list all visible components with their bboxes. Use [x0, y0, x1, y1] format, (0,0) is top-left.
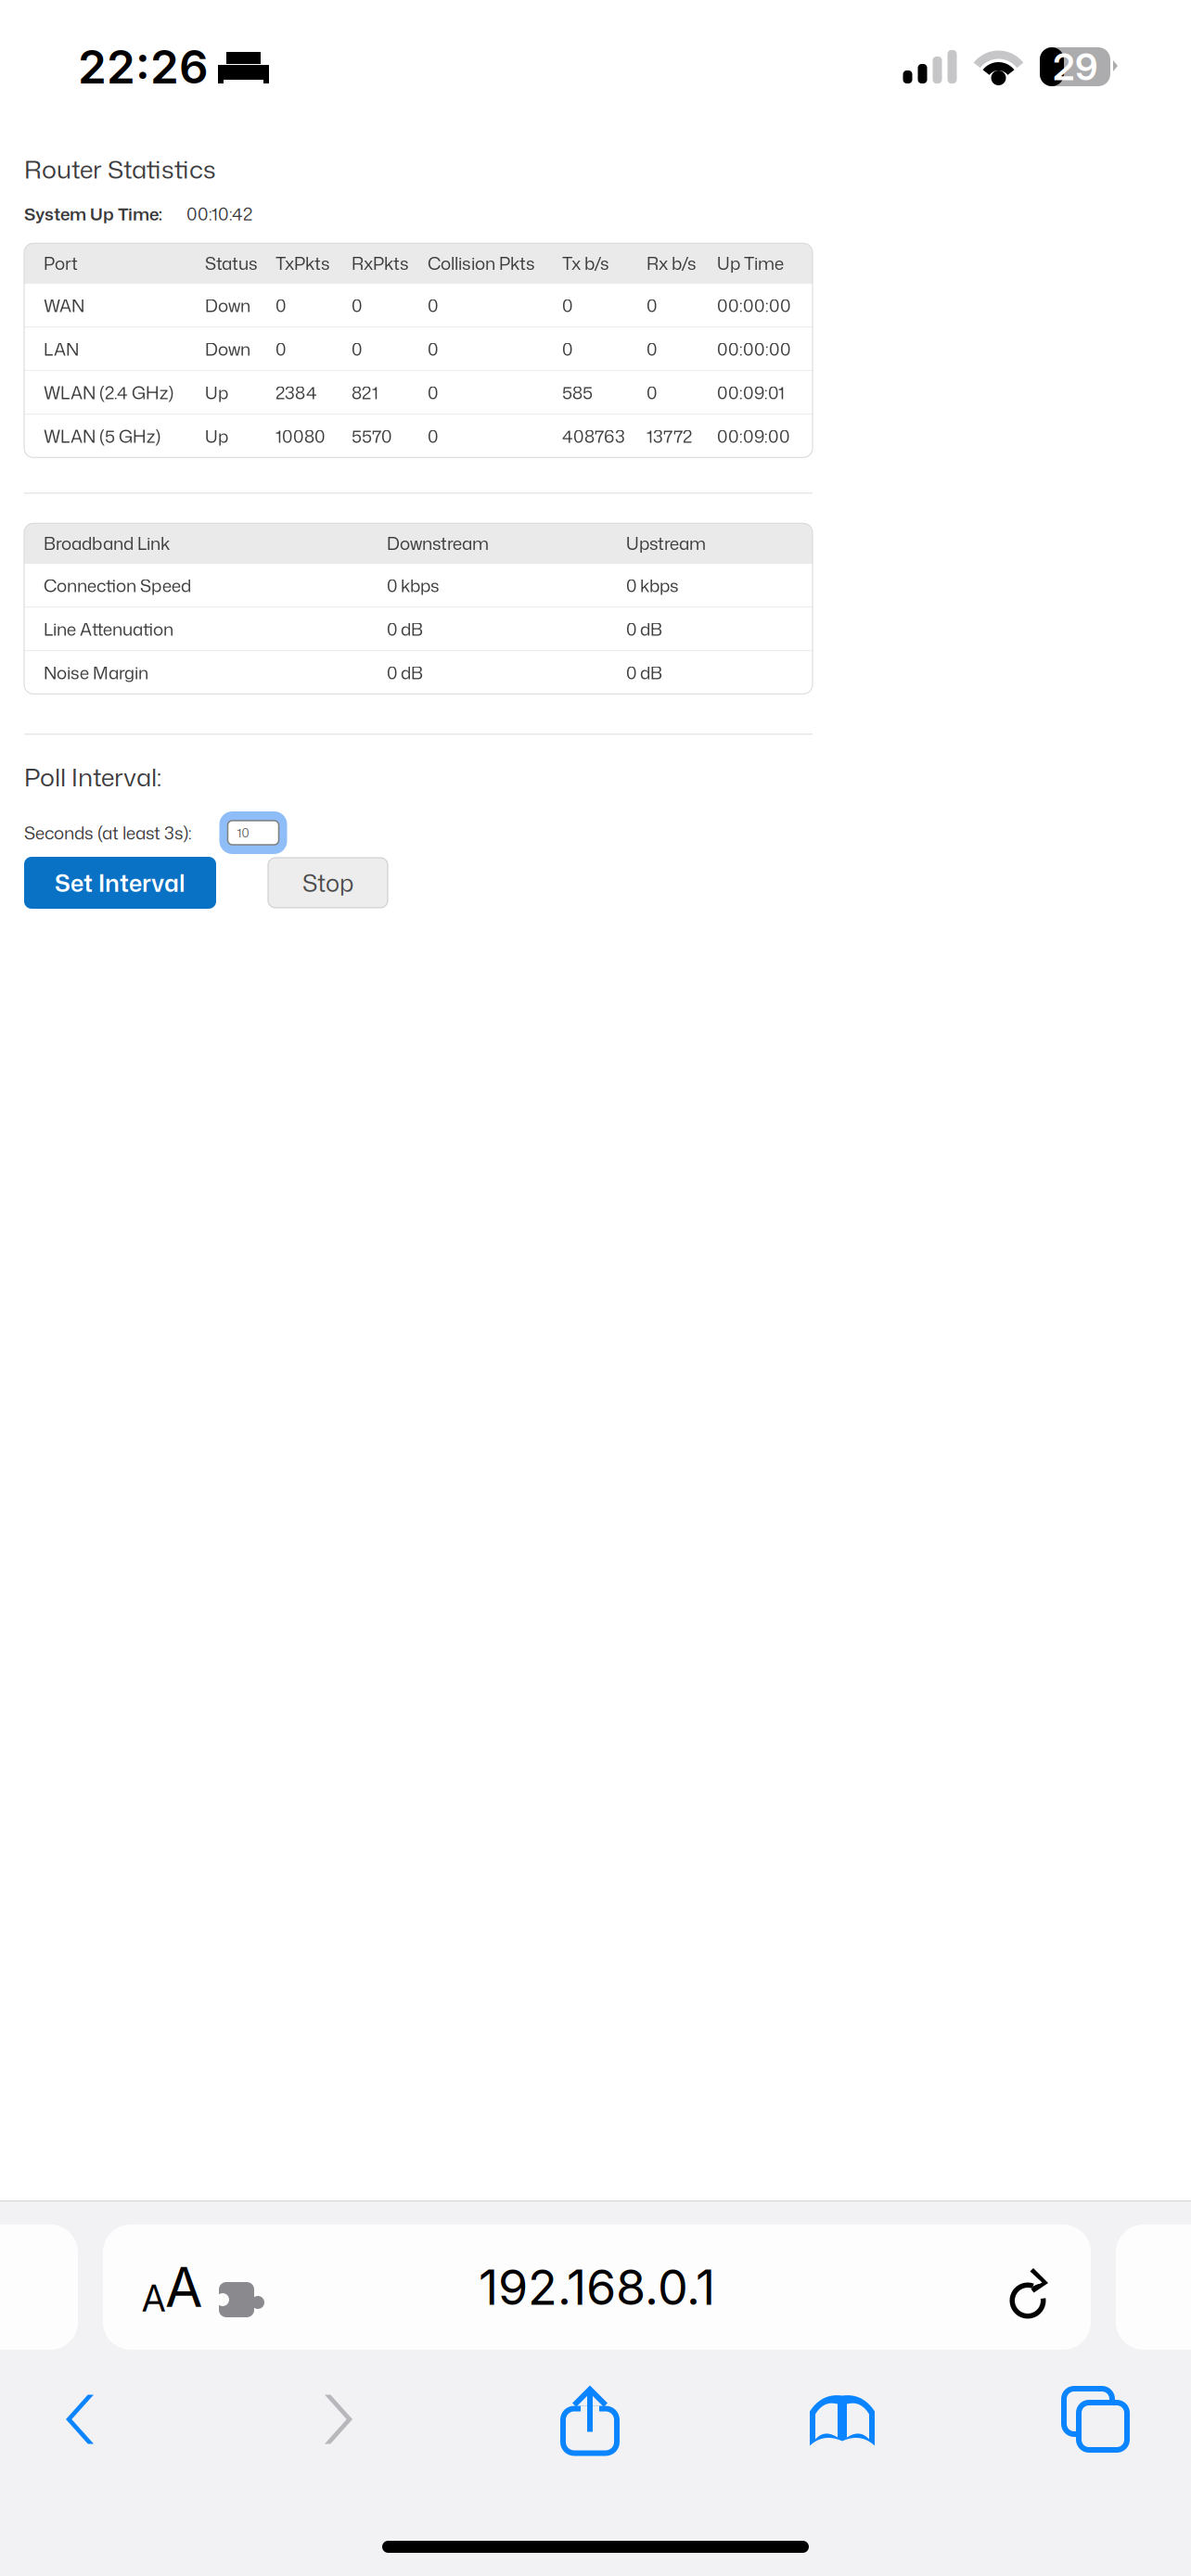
staticText: WAN	[44, 293, 84, 317]
staticText: 821	[352, 381, 378, 404]
button[interactable]: Forward	[325, 2395, 352, 2444]
staticText: Poll Interval:	[24, 760, 161, 794]
staticText: Down	[205, 337, 250, 361]
staticText: A	[142, 2277, 165, 2320]
staticText: 0	[647, 293, 657, 317]
staticText: Up	[205, 424, 228, 448]
staticText: 0 dB	[387, 617, 423, 641]
staticText: Downstream	[387, 531, 489, 555]
staticText: 00:09:00	[717, 424, 789, 448]
staticText: Broadband Link	[44, 531, 170, 555]
staticText: A	[165, 2254, 202, 2320]
staticText: 2384	[275, 381, 317, 404]
staticText: 0	[647, 337, 657, 361]
staticText: 5570	[352, 424, 391, 448]
staticText: LAN	[44, 337, 79, 361]
staticText: Upstream	[626, 531, 706, 555]
staticText: WLAN (2.4 GHz)	[44, 381, 173, 404]
staticText: 0	[428, 424, 438, 448]
staticText: 0	[352, 293, 362, 317]
staticText: 408763	[562, 424, 625, 448]
staticText: Up Time	[717, 251, 784, 275]
staticText: 0	[428, 337, 438, 361]
staticText: 0	[428, 381, 438, 404]
staticText: 00:00:00	[717, 337, 790, 361]
staticText: 0	[352, 337, 362, 361]
staticText: 29	[1053, 44, 1097, 89]
staticText: 00:10:42	[186, 202, 252, 226]
staticText: System Up Time:	[24, 202, 162, 226]
staticText: Status	[205, 251, 258, 275]
staticText: 00:00:00	[717, 293, 790, 317]
staticText: Tx b/s	[562, 251, 609, 275]
staticText: 13772	[647, 424, 692, 448]
staticText: Noise Margin	[44, 661, 148, 685]
button[interactable]: Set Interval	[24, 857, 216, 909]
staticText: Router Statistics	[24, 152, 216, 186]
staticText: 0	[275, 293, 286, 317]
button[interactable]: Share	[563, 2385, 617, 2453]
staticText: 192.168.0.1	[479, 2258, 715, 2316]
staticText: Seconds (at least 3s):	[24, 821, 192, 845]
staticText: Stop	[302, 867, 353, 899]
staticText: 0 dB	[626, 661, 662, 685]
staticText: 0 kbps	[387, 574, 440, 597]
staticText: Set Interval	[55, 867, 186, 899]
staticText: 22:26	[78, 39, 209, 94]
staticText: 0 kbps	[626, 574, 679, 597]
staticText: 0 dB	[387, 661, 423, 685]
staticText: 0 dB	[626, 617, 662, 641]
staticText: 0	[562, 337, 572, 361]
staticText: Up	[205, 381, 228, 404]
button[interactable]: Stop	[268, 858, 388, 908]
button[interactable]: A	[103, 2225, 1091, 2350]
staticText: 00:09:01	[717, 381, 785, 404]
staticText: Rx b/s	[647, 251, 697, 275]
staticText: 10080	[275, 424, 325, 448]
staticText: Collision Pkts	[428, 251, 535, 275]
staticText: WLAN (5 GHz)	[44, 424, 160, 448]
button[interactable]: Back	[66, 2395, 94, 2444]
staticText: 10	[237, 824, 249, 841]
staticText: Connection Speed	[44, 574, 191, 597]
staticText: Port	[44, 251, 78, 275]
staticText: 0	[428, 293, 438, 317]
staticText: TxPkts	[275, 251, 330, 275]
staticText: Down	[205, 293, 250, 317]
staticText: Line Attenuation	[44, 617, 173, 641]
staticText: 0	[562, 293, 572, 317]
button[interactable]: Bookmarks	[809, 2392, 876, 2447]
staticText: 0	[275, 337, 286, 361]
staticText: 585	[562, 381, 593, 404]
staticText: RxPkts	[352, 251, 409, 275]
button[interactable]: Tabs	[1064, 2389, 1127, 2450]
staticText: 0	[647, 381, 657, 404]
